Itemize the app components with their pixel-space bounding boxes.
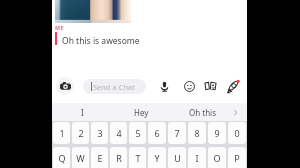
staticText: 9 <box>214 127 220 139</box>
button[interactable]: O <box>208 147 226 168</box>
button[interactable]: 7 <box>168 122 186 144</box>
staticText: 6 <box>154 127 160 139</box>
button[interactable]: Oh this <box>176 103 228 121</box>
button[interactable]: Stickers <box>203 78 219 94</box>
button[interactable]: More suggestions <box>224 103 247 121</box>
staticText: 2 <box>78 127 84 139</box>
button[interactable]: Hey <box>112 103 171 121</box>
button[interactable]: Send a Chat <box>83 79 146 94</box>
staticText: I <box>81 107 84 118</box>
staticText: 3 <box>97 127 103 139</box>
button[interactable]: 9 <box>208 122 226 144</box>
button[interactable]: Open camera <box>56 77 74 95</box>
button[interactable]: E <box>91 147 108 168</box>
staticText: 5 <box>135 127 141 139</box>
staticText: Hey <box>134 107 149 118</box>
button[interactable]: U <box>168 147 186 168</box>
staticText: W <box>76 152 85 164</box>
staticText: E <box>97 152 103 164</box>
button[interactable]: P <box>228 147 246 168</box>
button[interactable]: 0 <box>228 122 246 144</box>
staticText: Oh this is awesome <box>62 35 140 47</box>
button[interactable]: 1 <box>53 122 70 144</box>
button[interactable]: Q <box>53 147 70 168</box>
staticText: T <box>135 152 141 164</box>
button[interactable]: R <box>110 147 127 168</box>
staticText: 0 <box>234 127 240 139</box>
staticText: 4 <box>116 127 122 139</box>
staticText: 7 <box>174 127 180 139</box>
button[interactable]: Emoji <box>181 78 197 94</box>
button[interactable]: I <box>52 103 112 121</box>
button[interactable]: 8 <box>188 122 206 144</box>
button[interactable]: 5 <box>129 122 146 144</box>
staticText: Y <box>154 152 160 164</box>
staticText: P <box>234 152 240 164</box>
staticText: U <box>174 152 181 164</box>
button[interactable]: W <box>72 147 89 168</box>
button[interactable]: Send to friends <box>225 78 241 94</box>
staticText: Send a Chat <box>93 82 135 92</box>
button[interactable]: 6 <box>148 122 166 144</box>
staticText: Oh this <box>189 107 216 118</box>
staticText: I <box>195 152 199 164</box>
staticText: O <box>213 152 221 164</box>
button[interactable]: 4 <box>110 122 127 144</box>
button[interactable]: 2 <box>72 122 89 144</box>
staticText: 1 <box>59 127 65 139</box>
button[interactable]: 3 <box>91 122 108 144</box>
button[interactable]: Voice message <box>156 78 172 94</box>
button[interactable]: I <box>188 147 206 168</box>
button[interactable]: T <box>129 147 146 168</box>
staticText: 8 <box>194 127 200 139</box>
button[interactable]: Y <box>148 147 166 168</box>
staticText: R <box>116 152 122 164</box>
staticText: ME <box>55 24 64 31</box>
staticText: Q <box>58 152 66 164</box>
